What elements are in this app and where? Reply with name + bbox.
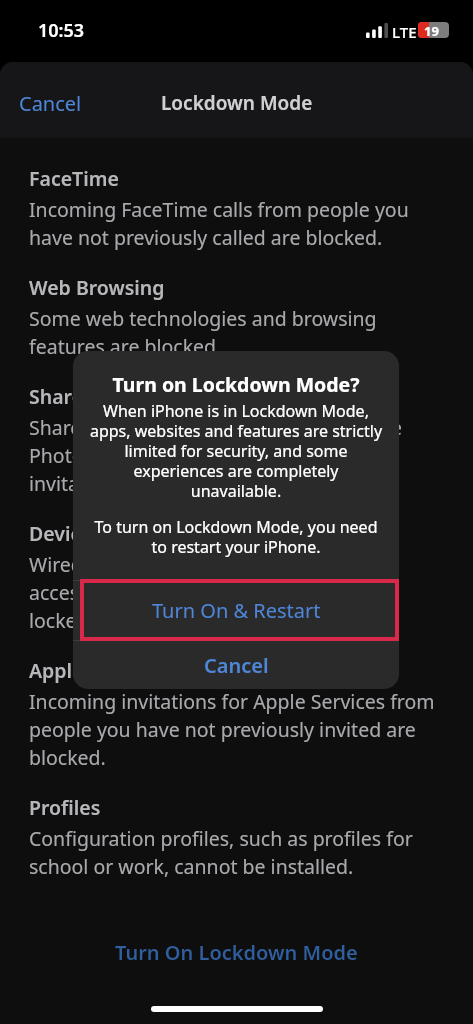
staticText: Shared Albums	[29, 383, 172, 410]
button[interactable]: Cancel	[0, 80, 92, 127]
staticText: 10:53	[38, 18, 85, 43]
staticText: When iPhone is in Lockdown Mode, apps, w…	[88, 400, 384, 501]
staticText: Cancel	[204, 652, 269, 679]
staticText: Profiles	[29, 794, 101, 821]
staticText: Some web technologies and browsing featu…	[29, 305, 448, 360]
staticText: 19	[424, 22, 439, 38]
staticText: Turn on Lockdown Mode?	[83, 371, 389, 398]
staticText: Apple Services	[29, 657, 167, 684]
staticText: Shared Albums will be removed from the P…	[29, 414, 448, 497]
staticText: To turn on Lockdown Mode, you need to re…	[88, 516, 384, 557]
staticText: Turn On & Restart	[152, 597, 321, 624]
staticText: Wired accessories and connections to acc…	[29, 551, 448, 634]
staticText: Configuration profiles, such as profiles…	[29, 825, 448, 880]
staticText: Lockdown Mode	[161, 90, 313, 116]
staticText: FaceTime	[29, 165, 119, 192]
button[interactable]: Turn On Lockdown Mode	[99, 933, 374, 972]
staticText: LTE	[392, 22, 417, 42]
staticText: Web Browsing	[29, 274, 165, 301]
button[interactable]: Cancel	[73, 641, 399, 689]
staticText: Device Connections	[29, 520, 215, 547]
button[interactable]: Turn On & Restart	[73, 581, 399, 640]
staticText: Incoming FaceTime calls from people you …	[29, 196, 448, 251]
staticText: Incoming invitations for Apple Services …	[29, 688, 448, 771]
